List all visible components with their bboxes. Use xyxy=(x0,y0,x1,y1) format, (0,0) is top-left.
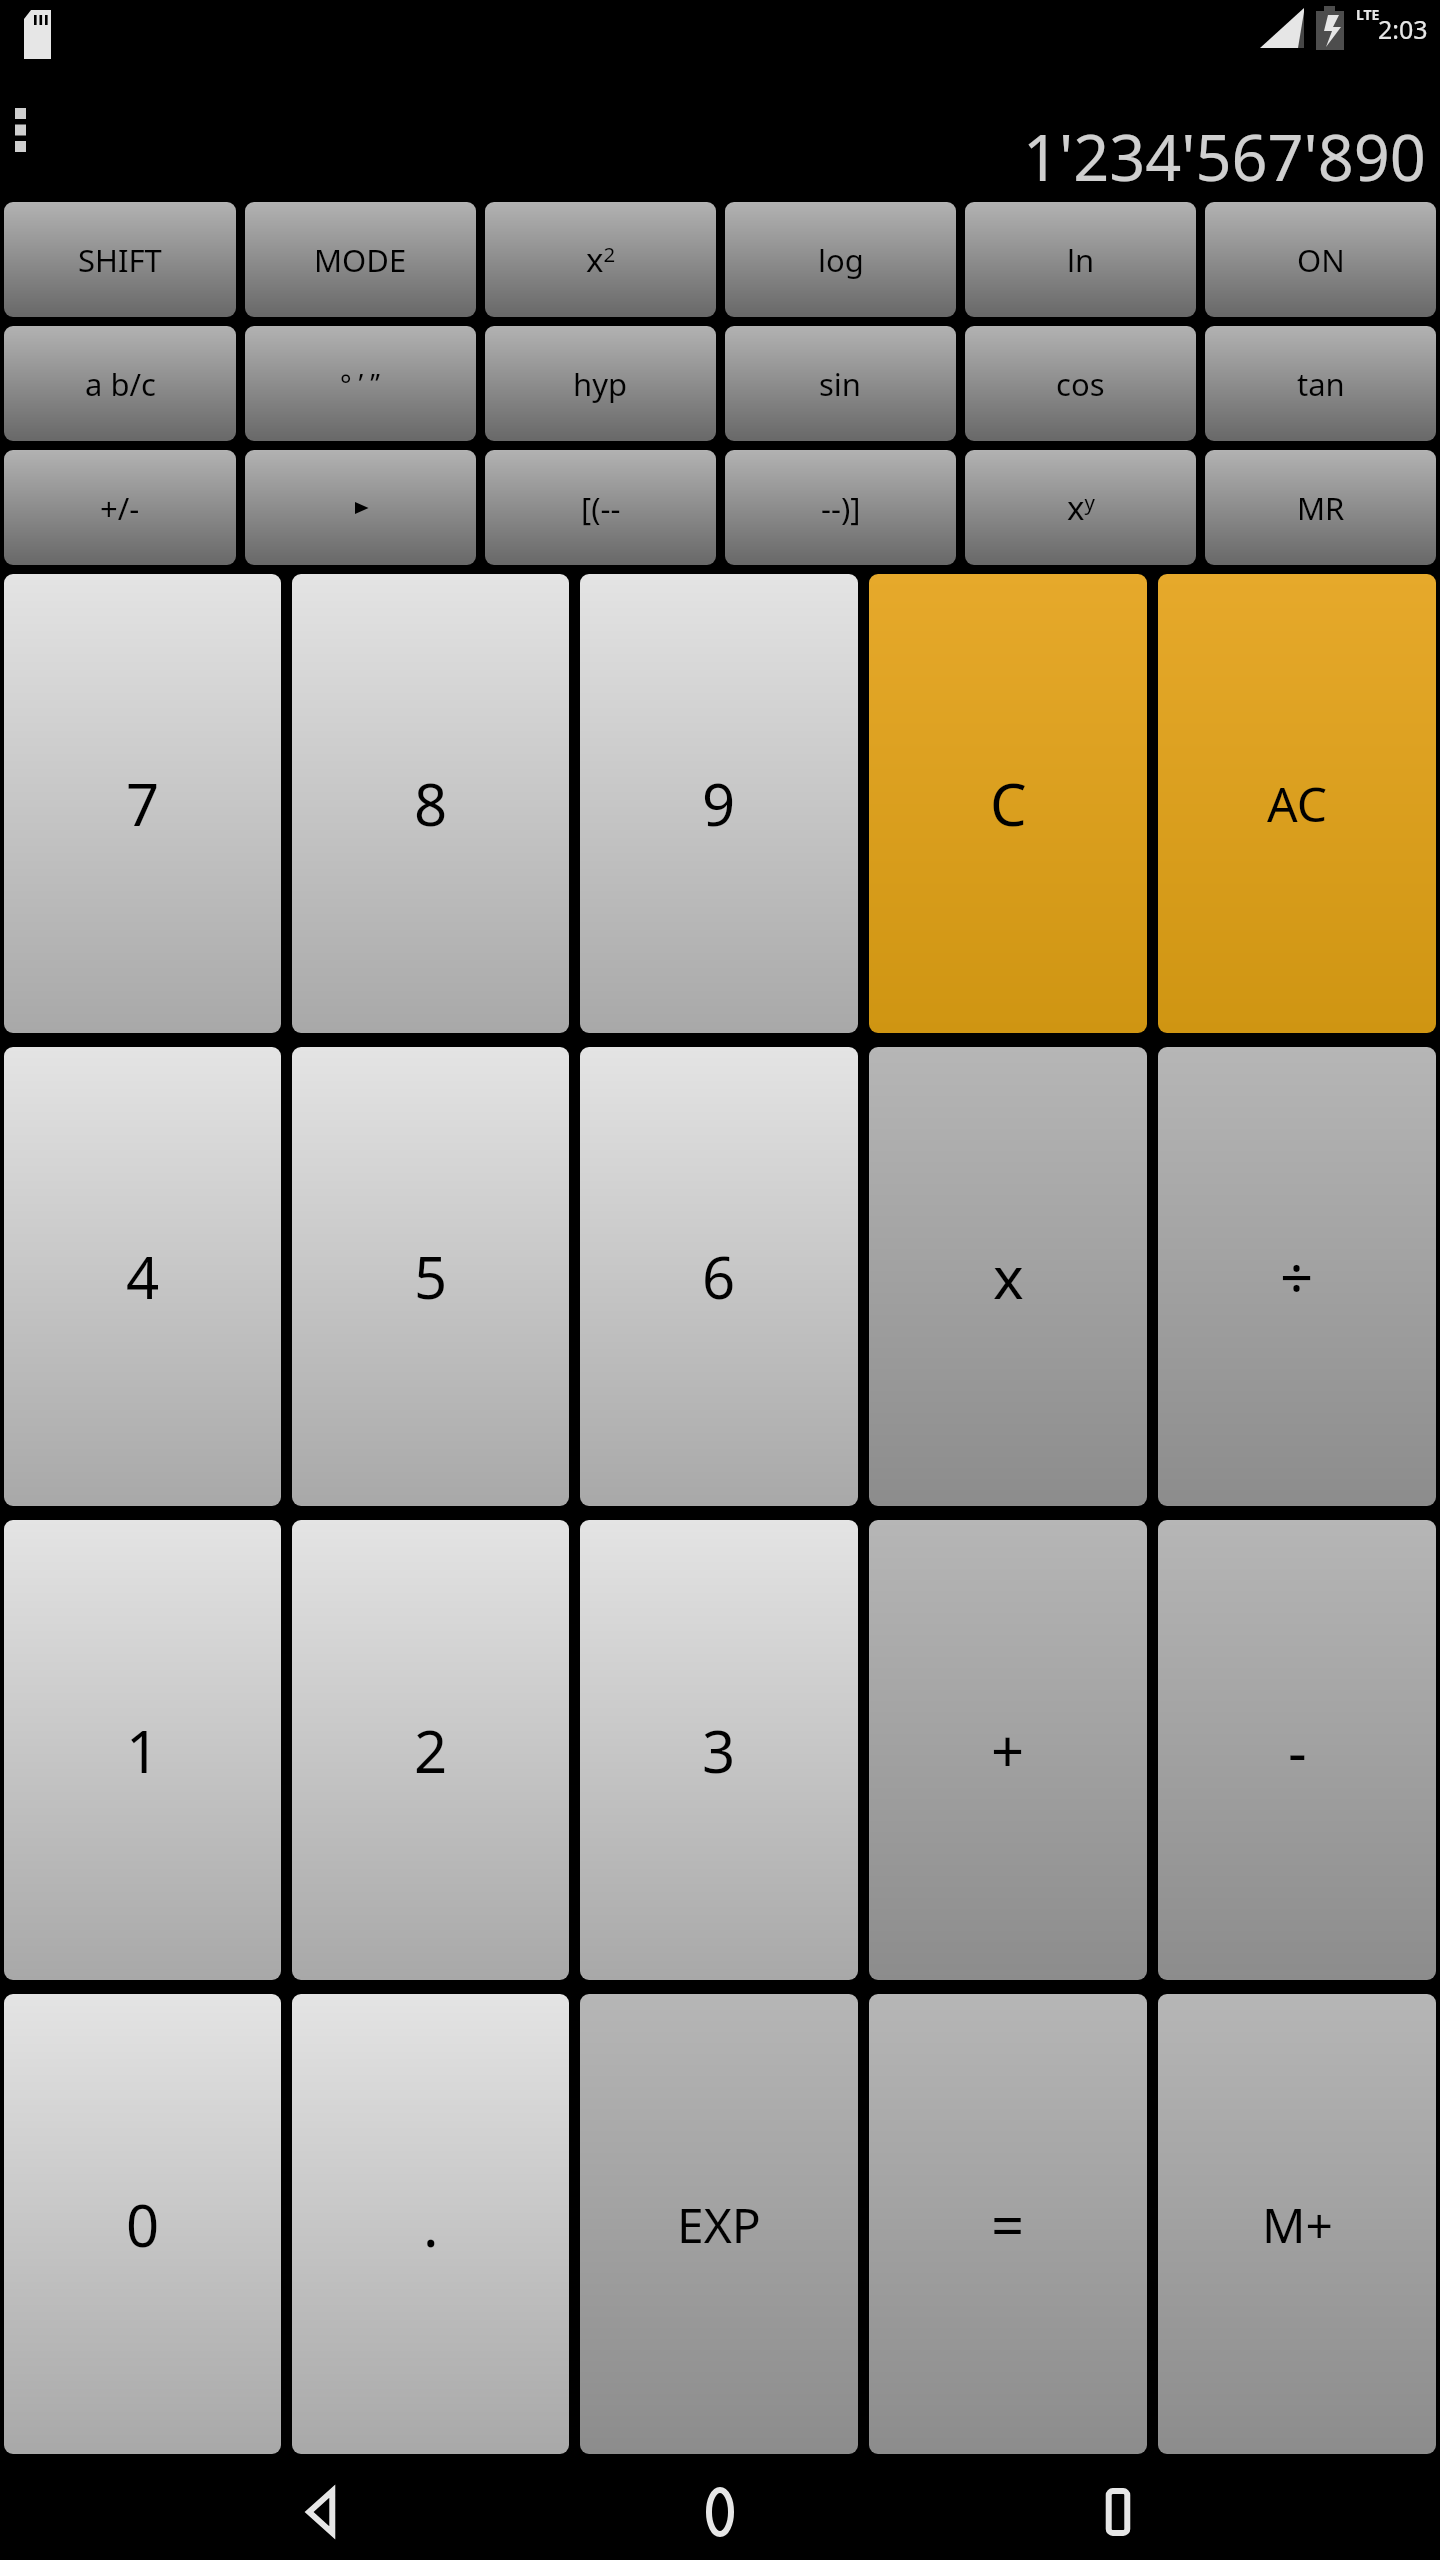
staticText: ON xyxy=(1297,239,1345,281)
staticText: LTE xyxy=(1356,5,1380,24)
staticText: 3 xyxy=(702,1711,736,1790)
button[interactable]: SHIFT xyxy=(4,202,236,317)
staticText: SHIFT xyxy=(78,239,162,281)
button[interactable]: - xyxy=(1158,1520,1436,1980)
button[interactable]: cos xyxy=(965,326,1196,441)
button[interactable]: 3 xyxy=(580,1520,858,1980)
button[interactable]: x2 xyxy=(485,202,716,317)
staticText: sin xyxy=(819,363,862,405)
staticText: --)] xyxy=(821,487,861,529)
button[interactable]: More options xyxy=(2,98,38,162)
button[interactable] xyxy=(245,450,476,565)
button[interactable]: hyp xyxy=(485,326,716,441)
button[interactable]: 6 xyxy=(580,1047,858,1506)
button[interactable]: MODE xyxy=(245,202,476,317)
staticText: 1'234'567'890 xyxy=(1023,114,1426,200)
button[interactable]: ° ’ ” xyxy=(245,326,476,441)
staticText: [(-- xyxy=(581,487,621,529)
staticText: ÷ xyxy=(1280,1237,1314,1316)
button[interactable]: 9 xyxy=(580,574,858,1033)
button[interactable]: C xyxy=(869,574,1147,1033)
staticText: 7 xyxy=(126,764,160,843)
staticText: EXP xyxy=(677,2192,761,2257)
staticText: +/- xyxy=(100,487,140,529)
staticText: MODE xyxy=(314,239,407,281)
button[interactable]: MR xyxy=(1205,450,1436,565)
staticText: 1 xyxy=(126,1711,160,1790)
button[interactable]: 1 xyxy=(4,1520,281,1980)
staticText: 6 xyxy=(702,1237,736,1316)
button[interactable]: 8 xyxy=(292,574,569,1033)
button[interactable]: ON xyxy=(1205,202,1436,317)
button[interactable]: M+ xyxy=(1158,1994,1436,2454)
button[interactable]: EXP xyxy=(580,1994,858,2454)
button[interactable]: . xyxy=(292,1994,569,2454)
staticText: AC xyxy=(1267,771,1328,836)
staticText: tan xyxy=(1297,363,1345,405)
button[interactable]: Back xyxy=(248,2464,398,2560)
staticText: 2:03 xyxy=(1378,12,1428,46)
button[interactable]: tan xyxy=(1205,326,1436,441)
button[interactable]: xy xyxy=(965,450,1196,565)
staticText: C xyxy=(990,764,1027,843)
button[interactable]: ÷ xyxy=(1158,1047,1436,1506)
button[interactable]: Home xyxy=(645,2464,795,2560)
button[interactable]: 5 xyxy=(292,1047,569,1506)
staticText: + xyxy=(991,1711,1025,1790)
button[interactable]: --)] xyxy=(725,450,956,565)
staticText: ° ’ ” xyxy=(340,365,381,402)
staticText: 4 xyxy=(126,1237,160,1316)
staticText: x xyxy=(993,1237,1024,1316)
button[interactable]: AC xyxy=(1158,574,1436,1033)
button[interactable]: 7 xyxy=(4,574,281,1033)
staticText: a b/c xyxy=(85,363,156,405)
staticText: 2 xyxy=(414,1711,448,1790)
button[interactable]: Recents xyxy=(1043,2464,1193,2560)
button[interactable]: log xyxy=(725,202,956,317)
staticText: 0 xyxy=(126,2185,160,2264)
staticText: 5 xyxy=(414,1237,448,1316)
button[interactable]: a b/c xyxy=(4,326,236,441)
staticText: 8 xyxy=(414,764,448,843)
staticText: xy xyxy=(1067,485,1095,530)
button[interactable]: sin xyxy=(725,326,956,441)
staticText: cos xyxy=(1056,363,1105,405)
button[interactable]: 2 xyxy=(292,1520,569,1980)
button[interactable]: [(-- xyxy=(485,450,716,565)
button[interactable]: +/- xyxy=(4,450,236,565)
staticText: - xyxy=(1288,1711,1307,1790)
button[interactable]: = xyxy=(869,1994,1147,2454)
button[interactable]: + xyxy=(869,1520,1147,1980)
button[interactable]: x xyxy=(869,1047,1147,1506)
staticText: M+ xyxy=(1262,2192,1333,2257)
staticText: . xyxy=(423,2185,439,2264)
staticText: log xyxy=(818,239,864,281)
staticText: = xyxy=(991,2185,1025,2264)
staticText: x2 xyxy=(586,237,616,282)
staticText: 9 xyxy=(702,764,736,843)
staticText: MR xyxy=(1297,487,1345,529)
staticText: hyp xyxy=(573,363,628,405)
staticText: ln xyxy=(1067,239,1095,281)
button[interactable]: 4 xyxy=(4,1047,281,1506)
button[interactable]: 0 xyxy=(4,1994,281,2454)
button[interactable]: ln xyxy=(965,202,1196,317)
